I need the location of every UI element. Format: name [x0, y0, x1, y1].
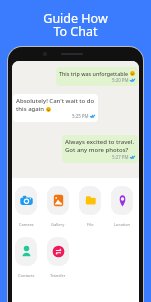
staticText: This trip was unforgettable: [59, 70, 129, 77]
button[interactable]: Transfer: [47, 237, 69, 278]
staticText: 5:20 PM: [112, 77, 129, 83]
staticText: Gallery: [51, 222, 65, 227]
button[interactable]: Gallery: [47, 186, 69, 227]
staticText: this again: [16, 105, 45, 113]
staticText: Always excited to travel.: [65, 138, 135, 146]
staticText: Camera: [19, 222, 34, 227]
staticText: Contacts: [18, 273, 35, 278]
staticText: 5:25 PM: [72, 113, 89, 119]
button[interactable]: Contacts: [15, 237, 37, 278]
button[interactable]: Location: [111, 186, 133, 227]
staticText: To Chat: [53, 23, 98, 40]
staticText: Location: [114, 222, 131, 227]
button[interactable]: File: [79, 186, 101, 227]
staticText: Transfer: [50, 273, 66, 278]
staticText: 5:27 PM: [112, 154, 129, 160]
staticText: Absolutely! Can't wait to do: [16, 97, 95, 105]
staticText: Guide How: [43, 10, 108, 27]
button[interactable]: Always excited to travel.: [65, 138, 135, 160]
staticText: Got any more photos?: [65, 146, 129, 154]
button[interactable]: Absolutely! Can't wait to do: [16, 97, 95, 119]
button[interactable]: This trip was unforgettable: [59, 70, 135, 83]
staticText: File: [87, 222, 94, 227]
button[interactable]: Camera: [15, 186, 37, 227]
